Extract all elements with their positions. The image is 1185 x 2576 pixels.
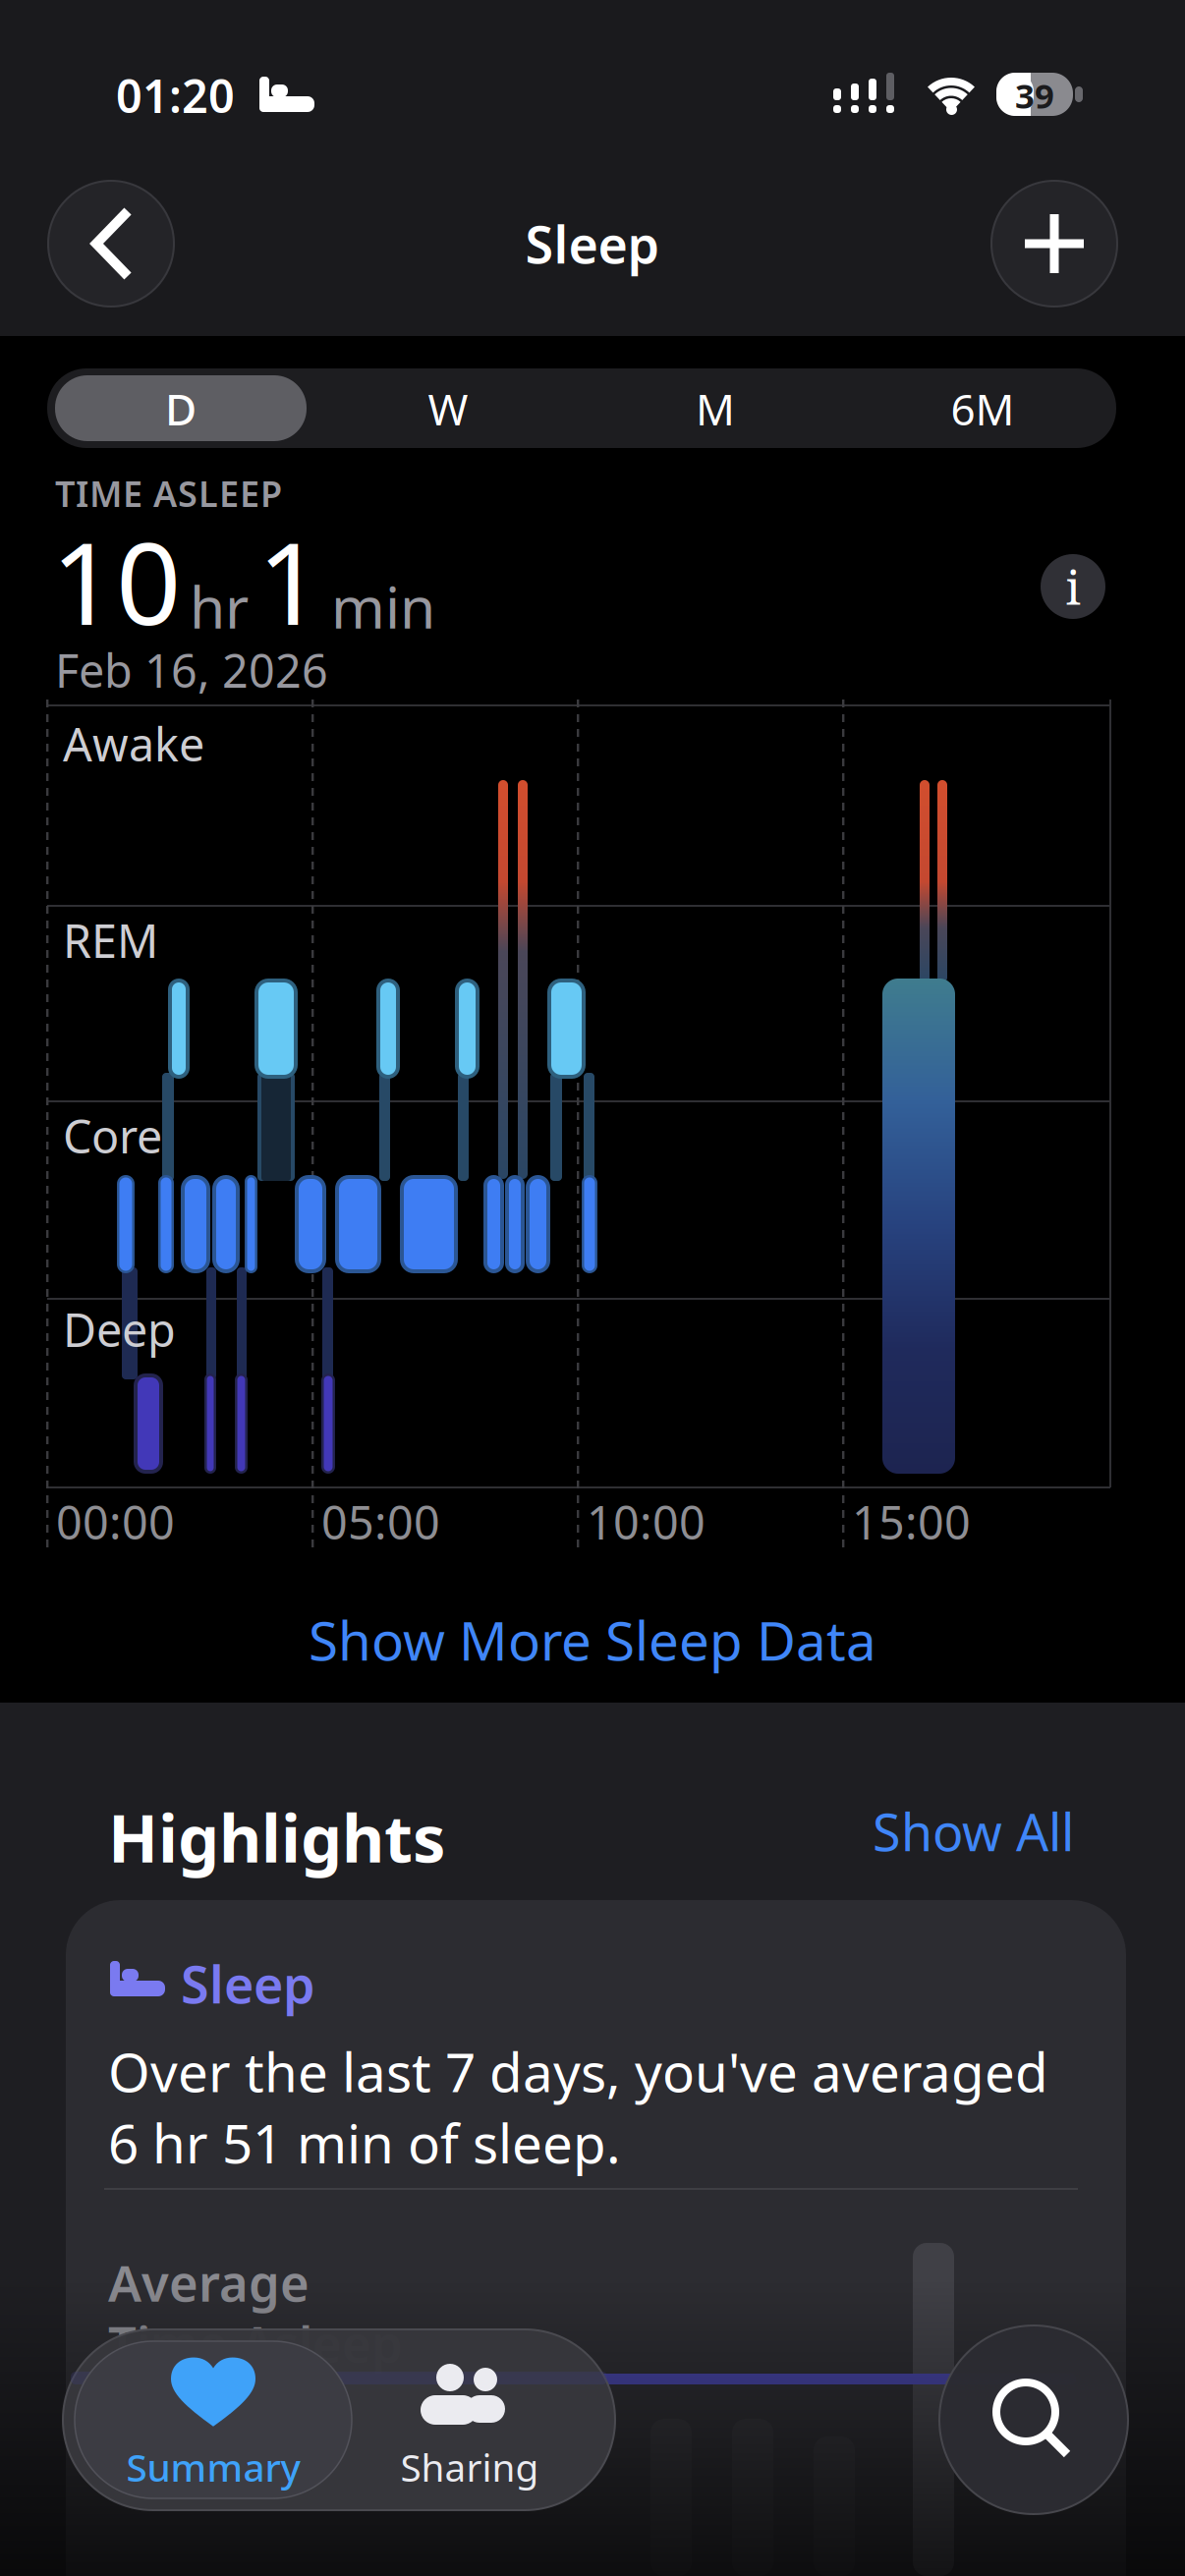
staticText: Show All	[873, 1797, 1074, 1865]
staticText: Feb 16, 2026	[55, 640, 328, 700]
staticText: TIME ASLEEP	[55, 470, 282, 517]
staticText: Summary	[126, 2442, 300, 2492]
staticText: REM	[63, 910, 158, 971]
staticText: 10	[51, 505, 181, 656]
staticText: Sleep	[181, 1950, 315, 2018]
staticText: 10:00	[587, 1491, 705, 1552]
staticText: 6M	[951, 380, 1015, 437]
staticText: W	[428, 380, 468, 437]
staticText: Over the last 7 days, you've averaged 6 …	[108, 2036, 1048, 2178]
staticText: 15:00	[852, 1491, 971, 1552]
staticText: Time Asleep	[108, 2310, 403, 2376]
staticText: D	[165, 380, 197, 437]
staticText: Core	[63, 1105, 162, 1166]
staticText: hr	[190, 568, 249, 644]
staticText: 1	[257, 505, 322, 656]
staticText: 05:00	[321, 1491, 440, 1552]
staticText: Awake	[63, 713, 204, 774]
staticText: Show More Sleep Data	[309, 1604, 876, 1675]
staticText: 01:20	[116, 65, 235, 126]
staticText: i	[1066, 554, 1080, 619]
staticText: Average	[108, 2249, 310, 2315]
staticText: Sleep	[525, 210, 660, 278]
staticText: 00:00	[56, 1491, 175, 1552]
staticText: min	[331, 568, 435, 644]
staticText: Sharing	[400, 2442, 539, 2492]
staticText: M	[696, 380, 735, 437]
staticText: 39	[1015, 73, 1054, 118]
staticText: Deep	[63, 1299, 176, 1360]
staticText: Highlights	[108, 1794, 445, 1881]
